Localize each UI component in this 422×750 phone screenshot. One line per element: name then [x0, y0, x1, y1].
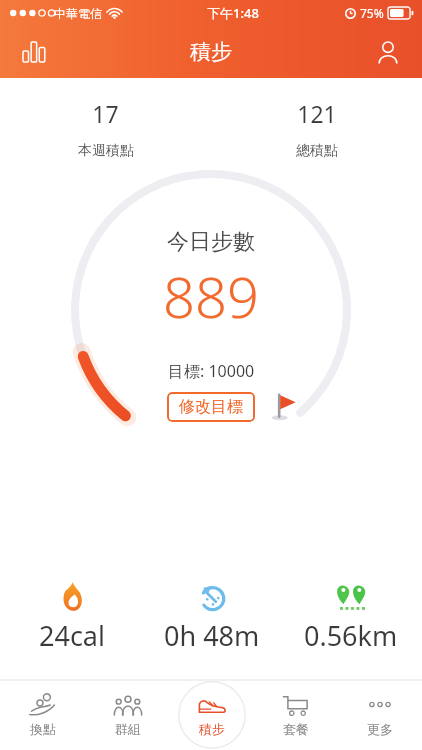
- button[interactable]: 24cal: [2, 577, 142, 654]
- staticText: 積步: [190, 39, 232, 65]
- staticText: 修改目標: [179, 397, 243, 417]
- button[interactable]: Statistics: [10, 28, 58, 76]
- staticText: 換點: [30, 721, 56, 737]
- staticText: 今日步數: [167, 228, 255, 256]
- button[interactable]: 0h 48m: [142, 577, 281, 654]
- staticText: 目標: 10000: [168, 360, 255, 382]
- staticText: 下午1:48: [207, 4, 259, 22]
- staticText: 121: [297, 98, 337, 129]
- button[interactable]: 0.56km: [281, 577, 420, 654]
- staticText: 17: [92, 98, 119, 129]
- staticText: 積步: [199, 721, 225, 737]
- staticText: 總積點: [296, 142, 338, 160]
- staticText: 0.56km: [304, 617, 398, 654]
- staticText: 24cal: [39, 617, 105, 654]
- button[interactable]: 修改目標: [167, 392, 255, 422]
- staticText: 本週積點: [78, 142, 134, 160]
- staticText: 群組: [115, 721, 141, 737]
- button[interactable]: 121: [211, 98, 422, 160]
- staticText: 套餐: [283, 721, 309, 737]
- button[interactable]: 套餐: [254, 680, 338, 750]
- button[interactable]: 群組: [85, 680, 170, 750]
- button[interactable]: Profile: [364, 28, 412, 76]
- staticText: 889: [163, 258, 259, 334]
- button[interactable]: 17: [0, 98, 211, 160]
- staticText: 中華電信: [54, 6, 102, 21]
- staticText: 75%: [360, 5, 384, 21]
- staticText: 更多: [367, 721, 393, 737]
- button[interactable]: 積步: [170, 680, 254, 750]
- button[interactable]: 更多: [338, 680, 422, 750]
- button[interactable]: 換點: [0, 680, 85, 750]
- staticText: 0h 48m: [164, 617, 260, 654]
